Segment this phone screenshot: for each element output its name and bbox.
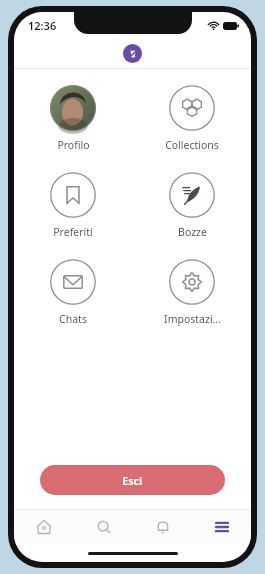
staticText: Chats xyxy=(59,312,87,326)
button[interactable]: Bozze xyxy=(146,170,238,241)
button[interactable]: Menu xyxy=(192,510,251,544)
staticText: Profilo xyxy=(57,138,90,152)
staticText: 12:36 xyxy=(28,18,57,33)
button[interactable]: Preferiti xyxy=(27,170,119,241)
button[interactable]: Search xyxy=(74,510,133,544)
button[interactable]: Esci xyxy=(40,465,225,495)
button[interactable]: Chats xyxy=(27,257,119,328)
staticText: Collections xyxy=(165,138,219,152)
staticText: Preferiti xyxy=(53,225,93,239)
button[interactable]: Impostazi… xyxy=(146,257,238,328)
button[interactable]: Notifications xyxy=(133,510,192,544)
button[interactable]: App logo xyxy=(123,44,142,63)
button[interactable]: Home xyxy=(14,510,74,544)
staticText: Bozze xyxy=(178,225,207,239)
button[interactable]: Collections xyxy=(146,83,238,154)
staticText: Esci xyxy=(122,473,143,488)
staticText: Impostazi… xyxy=(164,312,221,326)
button[interactable]: Profilo xyxy=(27,83,119,154)
